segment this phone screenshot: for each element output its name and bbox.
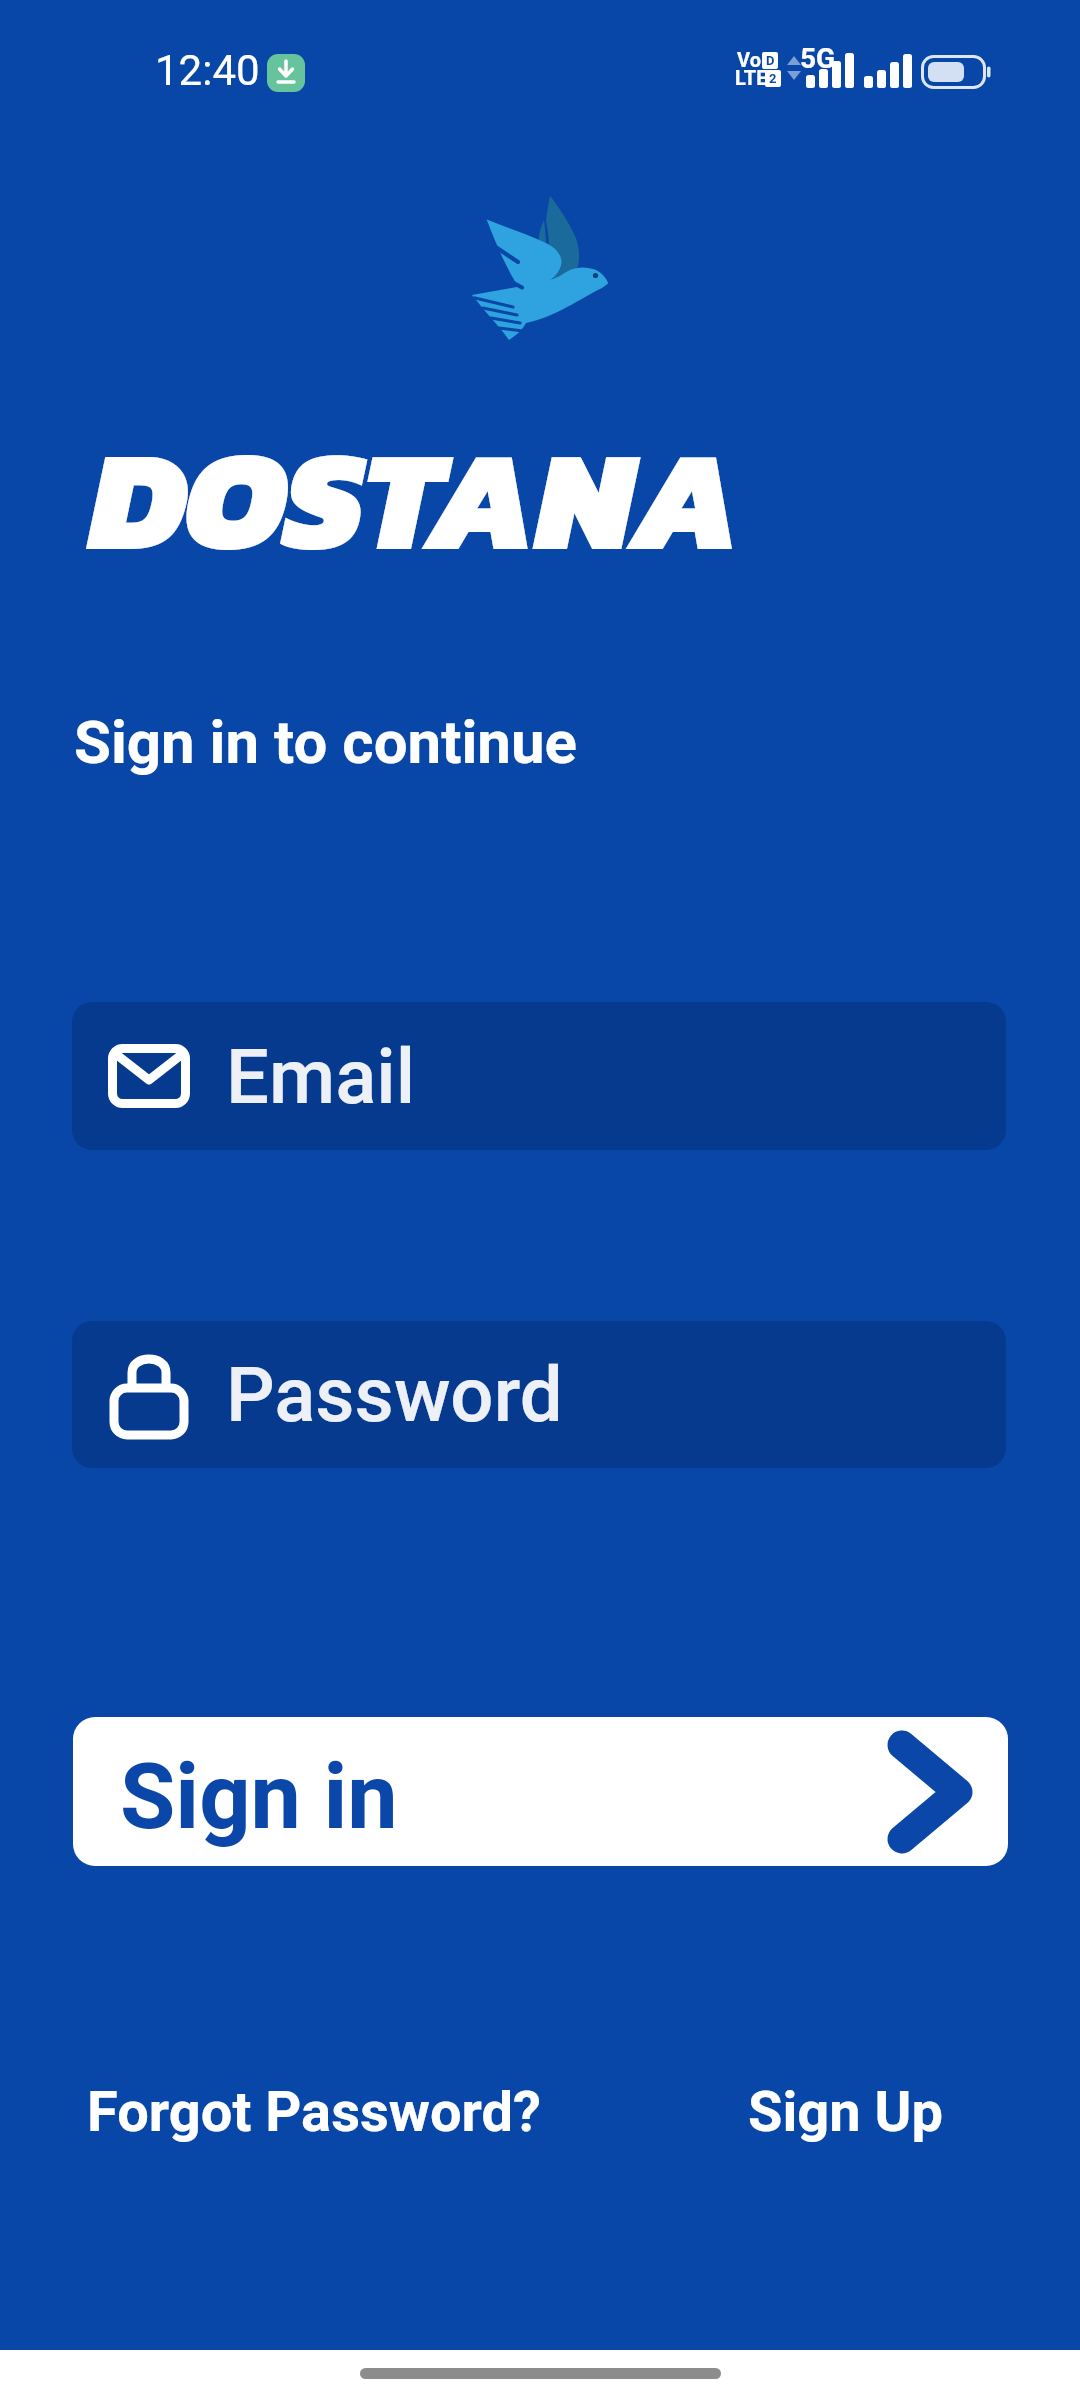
staticText: 5G	[800, 42, 836, 75]
button[interactable]: Email	[72, 1002, 1006, 1150]
staticText: Vo	[737, 48, 761, 71]
staticText: D	[766, 53, 775, 68]
staticText: Sign in	[120, 1745, 398, 1850]
staticText: DOSTANA	[89, 393, 740, 605]
staticText: 12:40	[155, 46, 260, 95]
staticText: Email	[226, 1032, 416, 1121]
button[interactable]: Sign in	[73, 1717, 1008, 1866]
staticText: LTE	[735, 66, 768, 89]
button[interactable]: Password	[72, 1321, 1006, 1468]
staticText: 2	[769, 71, 777, 86]
staticText: Sign in to continue	[74, 707, 577, 777]
staticText: Password	[226, 1350, 563, 1439]
button[interactable]: Forgot Password?	[87, 2079, 541, 2145]
button[interactable]: Sign Up	[748, 2079, 943, 2145]
